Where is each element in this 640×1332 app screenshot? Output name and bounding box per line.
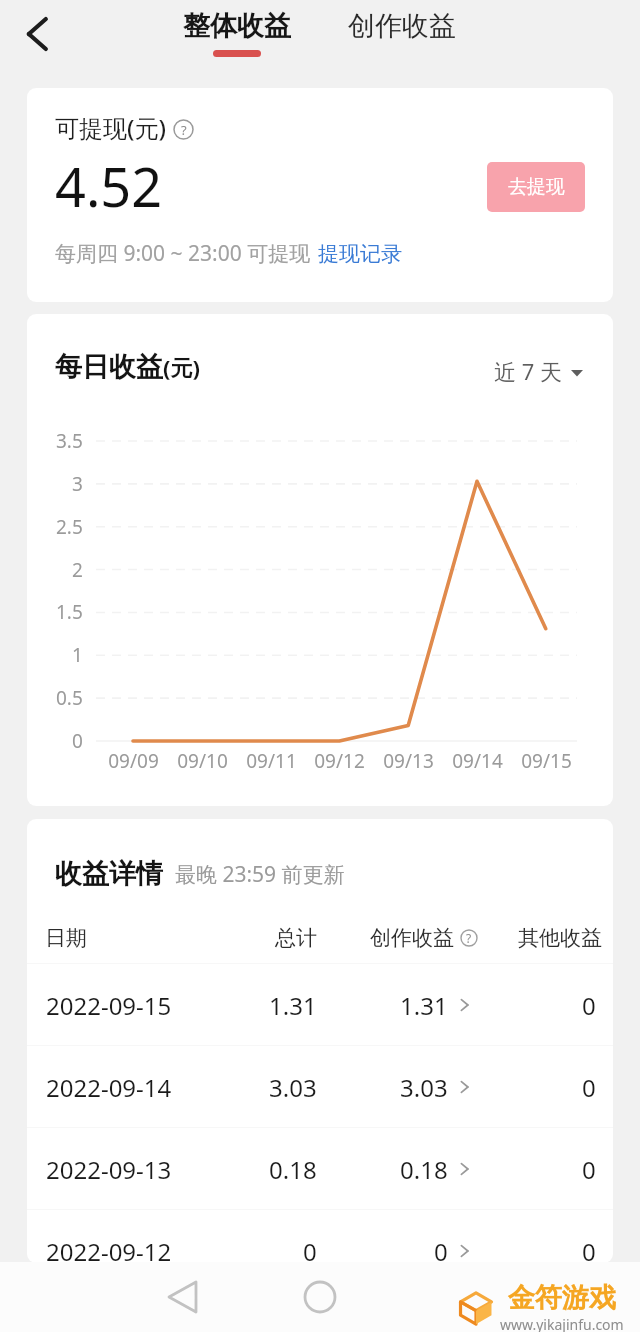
staticText: ? xyxy=(466,930,472,946)
staticText: 2022-09-14 xyxy=(46,1071,172,1104)
button[interactable]: 创作收益 xyxy=(347,9,457,43)
staticText: 2022-09-12 xyxy=(46,1235,172,1263)
button[interactable]: 近 7 天 xyxy=(494,356,583,386)
button[interactable]: 2022-09-14 xyxy=(27,1046,613,1128)
staticText: 提现记录 xyxy=(318,241,402,267)
staticText: 总计 xyxy=(275,925,317,951)
staticText: (元) xyxy=(163,352,200,382)
staticText: 0 xyxy=(582,1153,596,1186)
staticText: ? xyxy=(181,121,187,139)
staticText: 可提现(元) xyxy=(55,111,166,144)
staticText: 3.03 xyxy=(269,1071,317,1104)
staticText: 每周四 9:00 ~ 23:00 可提现 xyxy=(55,239,311,268)
staticText: 2.5 xyxy=(56,514,83,540)
staticText: 0 xyxy=(72,728,83,754)
button[interactable]: 整体收益 xyxy=(182,9,292,57)
staticText: 09/09 xyxy=(108,748,159,774)
staticText: 最晚 23:59 前更新 xyxy=(175,860,345,889)
button[interactable]: 2022-09-12 xyxy=(27,1210,613,1263)
button[interactable]: 去提现 xyxy=(487,162,585,212)
staticText: 09/15 xyxy=(521,748,572,774)
staticText: 日期 xyxy=(45,925,87,951)
staticText: 1.5 xyxy=(56,599,83,625)
staticText: 0 xyxy=(582,989,596,1022)
staticText: 09/13 xyxy=(383,748,434,774)
button[interactable]: 2022-09-15 xyxy=(27,964,613,1046)
staticText: 收益详情 xyxy=(55,857,163,891)
staticText: 0 xyxy=(303,1235,317,1263)
staticText: 3.5 xyxy=(56,428,83,454)
button[interactable]: 2022-09-13 xyxy=(27,1128,613,1210)
staticText: 09/11 xyxy=(246,748,297,774)
staticText: 去提现 xyxy=(508,175,565,199)
staticText: 2 xyxy=(72,557,83,583)
staticText: www.yikajinfu.com xyxy=(500,1315,624,1332)
staticText: 其他收益 xyxy=(518,925,602,951)
staticText: 4.52 xyxy=(55,149,163,223)
staticText: 09/14 xyxy=(452,748,503,774)
staticText: 09/10 xyxy=(177,748,228,774)
staticText: 0 xyxy=(582,1235,596,1263)
button[interactable]: Back xyxy=(13,10,61,58)
staticText: 2022-09-15 xyxy=(46,989,172,1022)
staticText: 1.31 xyxy=(269,989,317,1022)
staticText: 创作收益 xyxy=(348,9,456,43)
staticText: 整体收益 xyxy=(183,9,291,43)
staticText: 3 xyxy=(72,471,83,497)
staticText: 1.31 xyxy=(400,989,448,1022)
staticText: 09/12 xyxy=(314,748,365,774)
staticText: 0 xyxy=(582,1071,596,1104)
staticText: 0.18 xyxy=(269,1153,317,1186)
staticText: 0.18 xyxy=(400,1153,448,1186)
staticText: 0 xyxy=(434,1235,448,1263)
staticText: 0.5 xyxy=(56,685,83,711)
staticText: 近 7 天 xyxy=(494,356,563,386)
staticText: 3.03 xyxy=(400,1071,448,1104)
staticText: 创作收益 xyxy=(370,925,454,951)
staticText: 金符游戏 xyxy=(508,1281,616,1315)
staticText: 2022-09-13 xyxy=(46,1153,172,1186)
staticText: 每日收益 xyxy=(55,350,163,384)
staticText: 1 xyxy=(72,642,83,668)
